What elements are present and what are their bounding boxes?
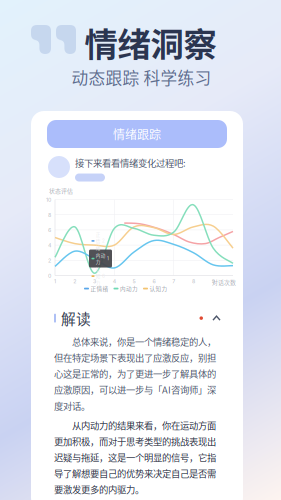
- staticText: 情绪洞察: [84, 18, 216, 66]
- staticText: 2: [102, 238, 105, 244]
- staticText: 解读: [61, 307, 91, 329]
- staticText: 9: [212, 278, 215, 284]
- staticText: 5: [133, 278, 136, 284]
- staticText: 2: [73, 278, 76, 284]
- staticText: 状态评估: [49, 186, 73, 195]
- staticText: 2: [48, 257, 51, 264]
- staticText: 1: [54, 278, 56, 284]
- staticText: 6: [152, 278, 155, 284]
- staticText: 1: [107, 256, 109, 261]
- staticText: 情绪跟踪: [113, 125, 161, 143]
- staticText: 动态跟踪 科学练习: [71, 65, 211, 89]
- staticText: 6: [48, 227, 51, 233]
- staticText: 0: [48, 272, 51, 279]
- staticText: 内动力: [96, 252, 106, 265]
- staticText: 6: [102, 273, 105, 279]
- staticText: 3: [93, 278, 96, 284]
- staticText: 正情绪: [90, 284, 108, 293]
- staticText: 总体来说，你是一个情绪稳定的人，但在特定场景下表现出了应激反应，别担心这是正常的…: [54, 335, 216, 412]
- staticText: 认知力: [149, 284, 167, 293]
- staticText: 8: [192, 278, 195, 284]
- staticText: 10: [46, 196, 51, 203]
- staticText: 4: [113, 278, 116, 284]
- staticText: 对话次数: [212, 278, 236, 286]
- staticText: 4: [48, 242, 51, 249]
- staticText: 正情绪: [96, 231, 101, 251]
- staticText: 7: [172, 278, 175, 284]
- staticText: 8: [48, 212, 51, 218]
- staticText: 接下来看看情绪变化过程吧:: [75, 156, 186, 169]
- staticText: 认知力: [96, 266, 101, 286]
- staticText: 从内动力的结果来看，你在运动方面更加积极，而对于思考类型的挑战表现出迟疑与拖延，…: [54, 418, 216, 496]
- staticText: 内动力: [120, 284, 138, 293]
